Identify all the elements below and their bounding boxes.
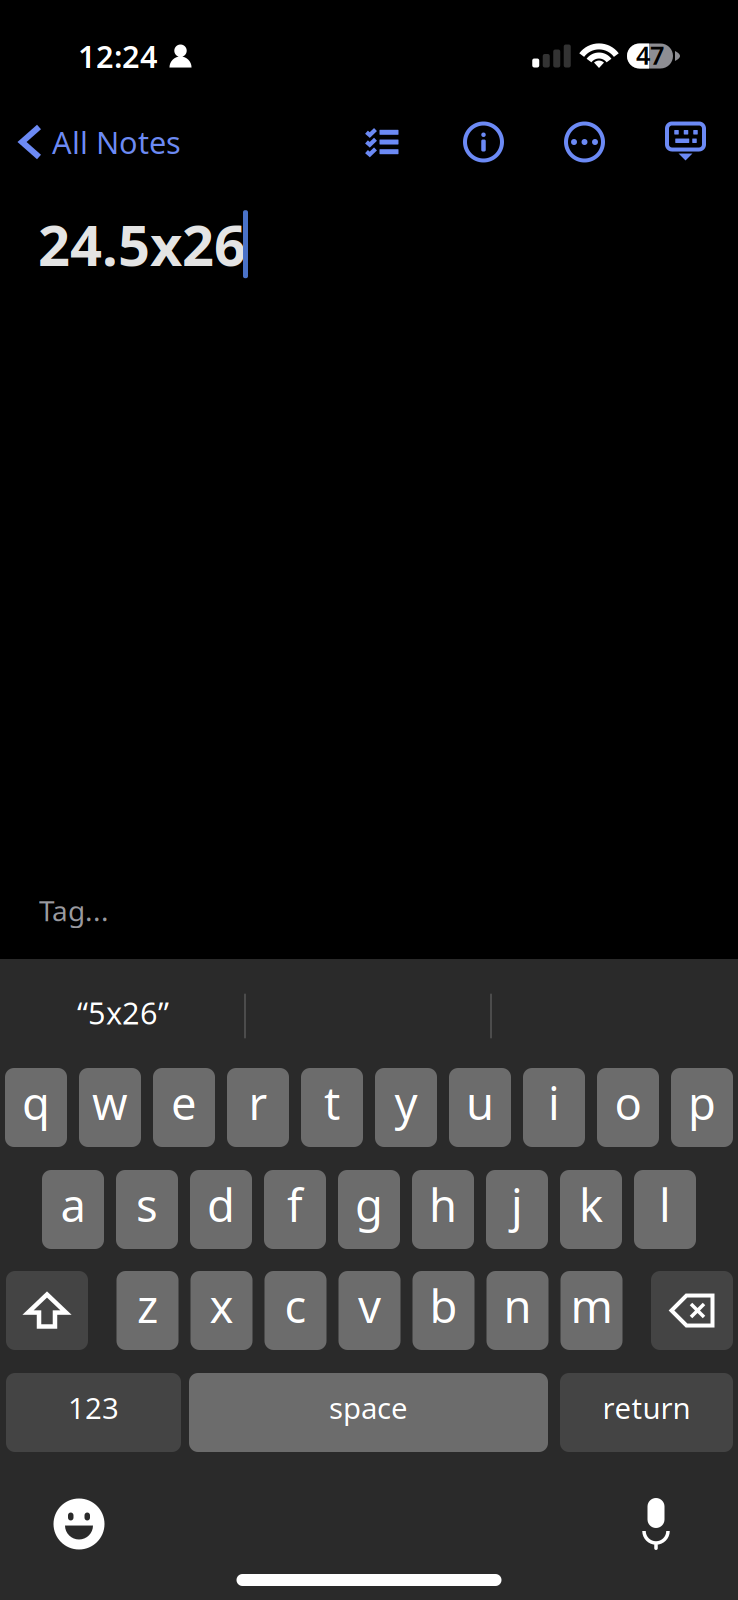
staticText: p	[688, 1072, 716, 1133]
button[interactable]: v	[338, 1271, 400, 1350]
button[interactable]: t	[301, 1068, 363, 1147]
button[interactable]: y	[375, 1068, 437, 1147]
staticText: z	[137, 1275, 158, 1336]
button[interactable]: n	[486, 1271, 548, 1350]
button[interactable]: b	[412, 1271, 474, 1350]
staticText: k	[579, 1174, 603, 1235]
button[interactable]: o	[597, 1068, 659, 1147]
staticText: e	[171, 1072, 197, 1133]
button[interactable]: Emoji	[41, 1492, 117, 1556]
staticText: j	[511, 1174, 523, 1235]
button[interactable]: z	[116, 1271, 178, 1350]
staticText: f	[287, 1174, 303, 1235]
staticText: n	[503, 1275, 531, 1336]
button[interactable]: 123	[6, 1373, 181, 1452]
button[interactable]: All Notes	[0, 100, 195, 172]
button[interactable]: k	[560, 1170, 622, 1249]
staticText: x	[209, 1275, 233, 1336]
staticText: c	[284, 1275, 306, 1336]
button[interactable]: Tag...	[0, 880, 729, 941]
staticText: i	[548, 1072, 560, 1133]
staticText: b	[429, 1275, 457, 1336]
staticText: v	[358, 1275, 381, 1336]
button[interactable]: q	[5, 1068, 67, 1147]
staticText: 24.5x26	[38, 207, 246, 281]
staticText: q	[22, 1072, 50, 1133]
button[interactable]: p	[671, 1068, 733, 1147]
button[interactable]: More	[534, 100, 635, 172]
staticText: y	[394, 1072, 417, 1133]
button[interactable]: Checklist	[332, 100, 433, 172]
button[interactable]: e	[153, 1068, 215, 1147]
button[interactable]: s	[116, 1170, 178, 1249]
button[interactable]: r	[227, 1068, 289, 1147]
button[interactable]: space	[189, 1373, 548, 1452]
staticText: return	[602, 1388, 690, 1427]
staticText: a	[60, 1174, 85, 1235]
button[interactable]: f	[264, 1170, 326, 1249]
staticText: s	[136, 1174, 158, 1235]
staticText: space	[329, 1388, 408, 1427]
staticText: 12:24	[78, 36, 158, 76]
staticText: All Notes	[52, 122, 181, 162]
button[interactable]: Shift	[6, 1271, 88, 1350]
staticText: o	[614, 1072, 641, 1133]
button[interactable]: “5x26”	[0, 959, 246, 1033]
staticText: l	[659, 1174, 671, 1235]
staticText: h	[429, 1174, 457, 1235]
button[interactable]: c	[264, 1271, 326, 1350]
button[interactable]: Hide Keyboard	[635, 100, 736, 172]
button[interactable]: w	[79, 1068, 141, 1147]
staticText: r	[248, 1072, 267, 1133]
staticText: 47	[636, 38, 664, 72]
staticText: g	[355, 1174, 383, 1235]
staticText: d	[207, 1174, 235, 1235]
button[interactable]: a	[42, 1170, 104, 1249]
button[interactable]: l	[634, 1170, 696, 1249]
button[interactable]: g	[338, 1170, 400, 1249]
button[interactable]: return	[560, 1373, 733, 1452]
staticText: “5x26”	[77, 992, 169, 1033]
staticText: t	[324, 1072, 340, 1133]
button[interactable]: h	[412, 1170, 474, 1249]
button[interactable]: Dictation	[618, 1492, 694, 1556]
button[interactable]: m	[560, 1271, 622, 1350]
button[interactable]: i	[523, 1068, 585, 1147]
button[interactable]: Note Info	[433, 100, 534, 172]
button[interactable]: j	[486, 1170, 548, 1249]
button[interactable]: u	[449, 1068, 511, 1147]
staticText: 123	[68, 1388, 119, 1427]
staticText: u	[466, 1072, 494, 1133]
staticText: m	[570, 1275, 612, 1336]
staticText: Tag...	[39, 892, 109, 929]
staticText: w	[92, 1072, 128, 1133]
button[interactable]: d	[190, 1170, 252, 1249]
button[interactable]: x	[190, 1271, 252, 1350]
button[interactable]: Delete	[651, 1271, 733, 1350]
